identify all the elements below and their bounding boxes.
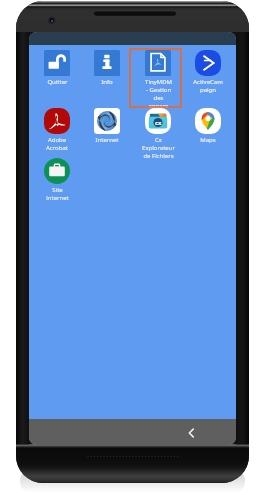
button[interactable]: Internet <box>88 108 126 144</box>
staticText: Internet <box>95 136 119 144</box>
staticText: ActiveCam paign <box>193 78 223 94</box>
button[interactable]: ActiveCam paign <box>189 50 227 94</box>
button[interactable]: Quitter <box>38 50 76 86</box>
button[interactable]: cx <box>139 108 177 160</box>
staticText: TinyMDM - Gestion des appare <box>145 78 172 110</box>
button[interactable]: Site internet <box>38 158 76 202</box>
staticText: Cx Explorateur de Fichiers <box>142 136 175 160</box>
staticText: Quitter <box>47 78 68 86</box>
button[interactable]: Adobe Acrobat <box>38 108 76 152</box>
button[interactable]: Back <box>182 424 200 442</box>
staticText: Site internet <box>46 186 69 202</box>
button[interactable]: Info <box>88 50 126 86</box>
staticText: Maps <box>200 136 216 144</box>
staticText: Info <box>101 78 113 86</box>
button[interactable]: TinyMDM - Gestion des appare <box>139 50 177 110</box>
button[interactable]: Maps <box>189 108 227 144</box>
staticText: cx <box>155 119 162 127</box>
staticText: Adobe Acrobat <box>46 136 68 152</box>
